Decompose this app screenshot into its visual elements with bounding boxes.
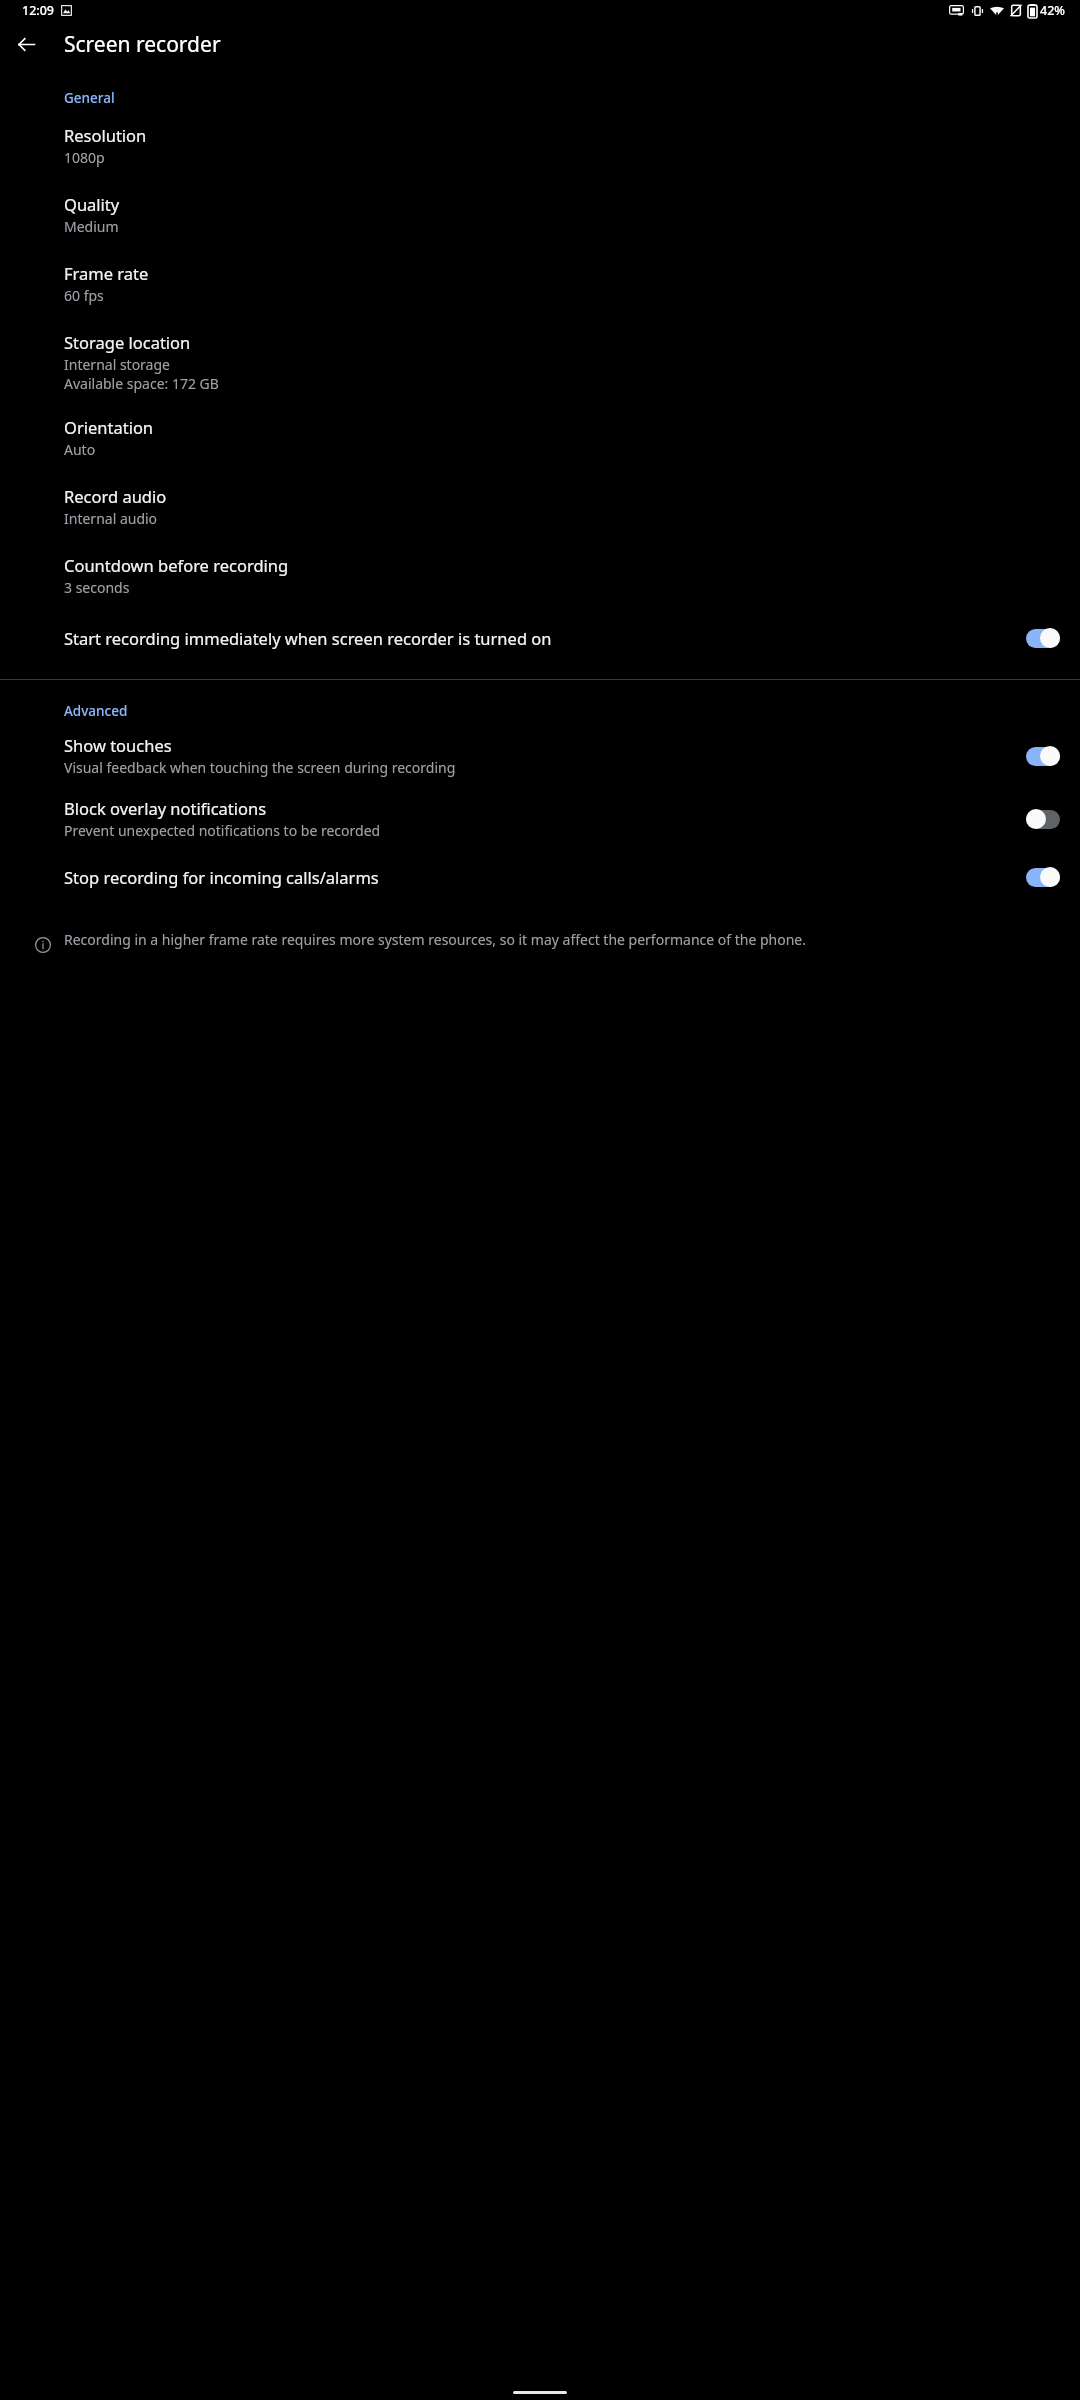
- staticText: Internal storage Available space: 172 GB: [64, 355, 219, 393]
- staticText: Prevent unexpected notifications to be r…: [64, 821, 381, 840]
- staticText: Record audio: [64, 485, 167, 507]
- staticText: Start recording immediately when screen …: [64, 627, 552, 649]
- staticText: Internal audio: [64, 509, 158, 528]
- staticText: Frame rate: [64, 262, 149, 284]
- staticText: Medium: [64, 217, 119, 236]
- staticText: Countdown before recording: [64, 554, 289, 576]
- staticText: Advanced: [64, 702, 128, 720]
- button[interactable]: Stop recording for incoming calls/alarms: [0, 850, 1080, 904]
- staticText: Screen recorder: [64, 30, 221, 59]
- staticText: Visual feedback when touching the screen…: [64, 758, 456, 777]
- staticText: Block overlay notifications: [64, 797, 267, 819]
- staticText: 1080p: [64, 148, 105, 167]
- button[interactable]: Resolution: [0, 111, 1080, 180]
- staticText: 60 fps: [64, 286, 104, 305]
- button[interactable]: Off: [1026, 809, 1060, 829]
- staticText: Resolution: [64, 124, 147, 146]
- staticText: Quality: [64, 193, 120, 215]
- staticText: Orientation: [64, 416, 154, 438]
- staticText: 3 seconds: [64, 578, 130, 597]
- button[interactable]: Record audio: [0, 472, 1080, 541]
- staticText: Stop recording for incoming calls/alarms: [64, 866, 379, 888]
- staticText: Auto: [64, 440, 96, 459]
- button[interactable]: Frame rate: [0, 249, 1080, 318]
- staticText: Storage location: [64, 331, 191, 353]
- button[interactable]: Back: [6, 24, 46, 64]
- button[interactable]: On: [1026, 746, 1060, 766]
- button[interactable]: Orientation: [0, 403, 1080, 472]
- staticText: General: [64, 89, 115, 107]
- button[interactable]: On: [1026, 628, 1060, 648]
- button[interactable]: Start recording immediately when screen …: [0, 610, 1080, 666]
- button[interactable]: Show touches: [0, 724, 1080, 787]
- button[interactable]: On: [1026, 867, 1060, 887]
- staticText: Recording in a higher frame rate require…: [64, 930, 1046, 949]
- button[interactable]: Quality: [0, 180, 1080, 249]
- button[interactable]: Block overlay notifications: [0, 787, 1080, 850]
- staticText: Show touches: [64, 734, 172, 756]
- staticText: 12:09: [22, 2, 55, 19]
- staticText: 42%: [1040, 2, 1065, 19]
- button[interactable]: Storage location: [0, 318, 1080, 403]
- button[interactable]: Countdown before recording: [0, 541, 1080, 610]
